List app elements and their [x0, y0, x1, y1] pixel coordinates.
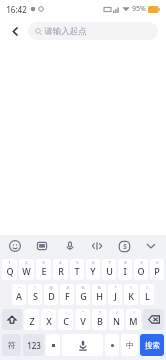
staticText: L	[145, 290, 150, 302]
staticText: !	[133, 310, 135, 315]
staticText: Q	[6, 265, 14, 277]
button[interactable]: !	[28, 284, 42, 305]
button[interactable]: 2	[19, 259, 34, 280]
button[interactable]: Hide keyboard	[144, 239, 158, 253]
staticText: U	[106, 265, 113, 277]
staticText: 0	[156, 260, 159, 265]
staticText: 8	[124, 260, 127, 265]
staticText: 中	[126, 340, 134, 350]
staticText: 7	[108, 260, 111, 265]
staticText: &	[98, 285, 101, 290]
button[interactable]: 1	[2, 259, 17, 280]
staticText: F	[65, 290, 70, 302]
button[interactable]: 0	[150, 259, 164, 280]
staticText: H	[96, 290, 103, 302]
staticText: P	[154, 265, 160, 277]
button[interactable]: 9	[134, 259, 148, 280]
button[interactable]: "	[75, 309, 90, 330]
staticText: N	[113, 315, 120, 327]
staticText: K	[128, 290, 134, 302]
button[interactable]: Shift	[2, 309, 22, 330]
button[interactable]: 123	[23, 334, 44, 356]
button[interactable]: Cursor move	[90, 239, 104, 253]
button[interactable]: !	[126, 309, 141, 330]
staticText: ~	[18, 285, 21, 290]
staticText: !	[34, 285, 36, 290]
staticText: S	[33, 290, 38, 302]
button[interactable]: 请输入起点	[28, 22, 158, 40]
staticText: G	[80, 290, 87, 302]
button[interactable]: Space, voice input	[62, 334, 103, 356]
staticText: 123	[27, 340, 41, 351]
staticText: Y	[90, 265, 96, 277]
button[interactable]: 8	[118, 259, 132, 280]
button[interactable]: %	[76, 284, 90, 305]
button[interactable]: 6	[86, 259, 100, 280]
staticText: /	[116, 310, 118, 315]
staticText: 95%	[132, 4, 146, 14]
button[interactable]: Voice input	[63, 239, 77, 253]
staticText: Z	[29, 315, 35, 327]
button[interactable]: #	[60, 284, 74, 305]
button[interactable]: Back	[4, 20, 26, 42]
staticText: M	[129, 315, 138, 327]
button[interactable]: -	[24, 309, 39, 330]
button[interactable]: (	[124, 284, 138, 305]
button[interactable]: 7	[102, 259, 116, 280]
button[interactable]: 4	[53, 259, 68, 280]
staticText: S	[123, 242, 127, 251]
button[interactable]: ?	[92, 309, 107, 330]
staticText: E	[41, 265, 47, 277]
button[interactable]: Comma	[46, 334, 60, 356]
staticText: "	[82, 310, 84, 315]
staticText: W	[22, 265, 31, 277]
staticText: 3	[42, 260, 45, 265]
button[interactable]: 符	[2, 334, 21, 356]
button[interactable]: 搜索	[140, 334, 164, 356]
button[interactable]: Clipboard	[35, 239, 49, 253]
staticText: )	[146, 285, 148, 290]
button[interactable]: &	[92, 284, 106, 305]
button[interactable]: /	[109, 309, 124, 330]
staticText: 请输入起点	[44, 26, 87, 37]
staticText: 2	[25, 260, 28, 265]
staticText: '	[48, 310, 49, 315]
button[interactable]: Emoji	[8, 239, 22, 253]
button[interactable]: )	[140, 284, 154, 305]
button[interactable]: 3	[36, 259, 51, 280]
button[interactable]: *	[108, 284, 122, 305]
staticText: ?	[99, 310, 101, 315]
staticText: X	[46, 315, 52, 327]
staticText: 9	[140, 260, 143, 265]
staticText: A	[16, 290, 22, 302]
staticText: V	[80, 315, 86, 327]
staticText: R	[58, 265, 64, 277]
button[interactable]: 5	[70, 259, 84, 280]
button[interactable]: ~	[12, 284, 26, 305]
staticText: O	[137, 265, 145, 277]
staticText: *	[114, 285, 117, 290]
staticText: 符	[8, 340, 16, 350]
staticText: :	[65, 310, 67, 315]
staticText: D	[48, 290, 55, 302]
staticText: #	[66, 285, 69, 290]
staticText: 1	[8, 260, 11, 265]
button[interactable]: @	[44, 284, 58, 305]
button[interactable]: :	[58, 309, 73, 330]
button[interactable]: Period	[105, 334, 119, 356]
staticText: @	[49, 285, 53, 290]
button[interactable]: Sogou	[118, 240, 131, 253]
staticText: I	[123, 265, 127, 277]
staticText: (	[130, 285, 132, 290]
button[interactable]: Backspace	[143, 309, 164, 330]
staticText: 5	[76, 260, 79, 265]
staticText: -	[31, 310, 33, 315]
staticText: 6	[92, 260, 95, 265]
button[interactable]: 中	[121, 334, 138, 356]
staticText: %	[81, 285, 85, 290]
button[interactable]: '	[41, 309, 56, 330]
staticText: B	[97, 315, 103, 327]
staticText: C	[63, 315, 69, 327]
staticText: 16:42	[6, 4, 27, 15]
staticText: 搜索	[145, 341, 160, 350]
